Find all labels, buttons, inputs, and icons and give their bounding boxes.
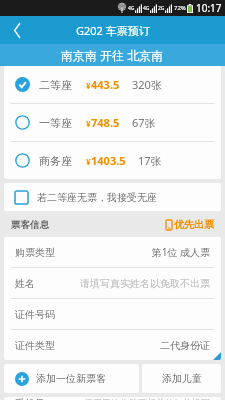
button[interactable]: 一等座 (4, 104, 221, 141)
button[interactable]: 优先出票 (166, 218, 214, 231)
staticText: 请填写真实姓名以免取不出票 (80, 277, 210, 290)
staticText: 添加一位新票客 (36, 372, 106, 385)
button[interactable]: 商务座 (4, 142, 221, 179)
staticText: 二等座 (39, 78, 72, 92)
button[interactable]: 证件号码 (4, 299, 221, 329)
staticText: 优先出票 (174, 218, 214, 231)
staticText: 10:17 (196, 1, 222, 15)
staticText: ¥ (86, 118, 91, 129)
staticText: 2G (158, 5, 165, 12)
staticText: G202 车票预订 (76, 23, 150, 38)
staticText: 第1位 成人票 (151, 245, 210, 259)
staticText: 购票类型 (15, 246, 55, 259)
button[interactable]: 若二等座无票，我接受无座 (4, 183, 221, 211)
staticText: 添加儿童 (162, 372, 202, 385)
staticText: 67张 (132, 115, 156, 130)
staticText: ¥ (86, 156, 91, 167)
button[interactable]: 手机号 (4, 397, 221, 400)
staticText: 443.5 (91, 77, 120, 92)
button[interactable]: 证件类型 (4, 330, 221, 360)
staticText: 320张 (132, 77, 162, 92)
staticText: 1403.5 (91, 153, 126, 168)
staticText: 证件号码 (15, 308, 55, 321)
staticText: 若二等座无票，我接受无座 (37, 191, 157, 204)
staticText: ¥ (86, 80, 91, 91)
staticText: 手机号 (15, 397, 45, 400)
staticText: 商务座 (39, 154, 72, 168)
button[interactable]: 添加一位新票客 (4, 364, 139, 393)
staticText: 南京南 开往 北京南 (61, 47, 164, 63)
staticText: 748.5 (91, 115, 120, 130)
button[interactable]: 姓名 (4, 268, 221, 298)
button[interactable]: 添加儿童 (142, 364, 221, 393)
staticText: 姓名 (15, 277, 35, 290)
staticText: 仅用于接收购票相关的短信提醒 (84, 397, 210, 400)
staticText: 17张 (138, 153, 162, 168)
button[interactable]: Back (0, 16, 34, 44)
staticText: 二代身份证 (160, 339, 210, 352)
staticText: 一等座 (39, 116, 72, 130)
staticText: 72% (174, 4, 186, 12)
staticText: 票客信息 (11, 219, 49, 231)
staticText: 4G (143, 5, 150, 12)
staticText: 证件类型 (15, 339, 55, 352)
button[interactable]: 购票类型 (4, 237, 221, 267)
staticText: 4G (128, 5, 135, 12)
button[interactable]: 二等座 (4, 66, 221, 103)
